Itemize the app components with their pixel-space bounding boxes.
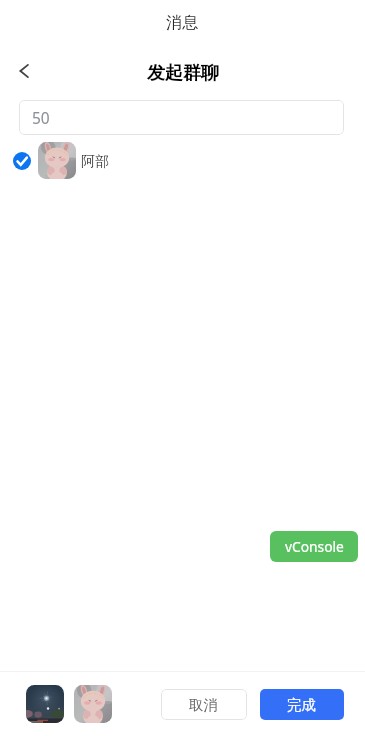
button[interactable]: 取消 [161, 689, 247, 720]
button[interactable]: 50 [19, 100, 344, 135]
staticText: 发起群聊 [147, 62, 219, 85]
staticText: 50 [32, 107, 50, 128]
staticText: 消息 [166, 12, 199, 32]
staticText: 阿部 [81, 153, 109, 171]
staticText: 取消 [189, 696, 219, 714]
button[interactable]: 完成 [260, 689, 344, 720]
button[interactable]: 阿部 [0, 142, 365, 179]
button[interactable]: Remove selected member 阿部 [74, 685, 112, 723]
button[interactable]: vConsole [270, 531, 358, 562]
staticText: vConsole [285, 537, 344, 556]
button[interactable]: Remove selected member [26, 685, 64, 723]
button[interactable]: Back [10, 57, 38, 85]
staticText: 完成 [287, 696, 317, 714]
